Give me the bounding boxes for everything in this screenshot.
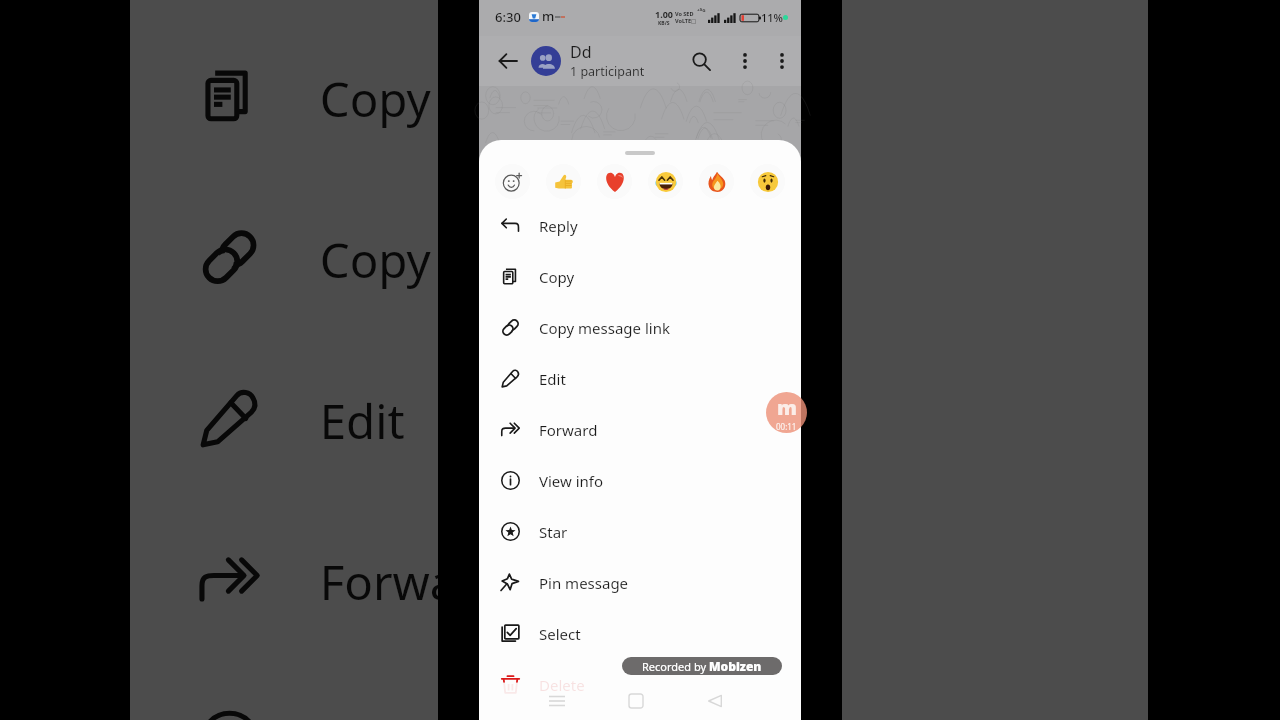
staticText: Delete — [539, 675, 585, 695]
button[interactable]: React — [742, 161, 793, 201]
button[interactable]: React — [538, 161, 589, 201]
staticText: Copy message link — [320, 227, 734, 290]
button[interactable]: Group avatar — [531, 46, 561, 76]
button[interactable]: Edit — [130, 338, 1148, 499]
button[interactable]: Back — [493, 46, 523, 76]
button[interactable]: Copy message link — [130, 177, 1148, 338]
button[interactable]: React — [487, 161, 538, 201]
button[interactable]: Search — [685, 45, 717, 77]
staticText: Mobizen — [709, 658, 762, 674]
staticText: Vo SED — [675, 10, 694, 17]
staticText: Forward — [320, 550, 506, 613]
button[interactable]: React — [640, 161, 691, 201]
staticText: m — [542, 7, 555, 25]
button[interactable]: More options — [729, 45, 761, 77]
staticText: Edit — [539, 369, 566, 389]
button[interactable]: Reply — [130, 0, 1148, 15]
button[interactable]: View info — [479, 455, 801, 506]
staticText: ⁺⁵ᴳ — [697, 7, 706, 17]
staticText: VoLTE□ — [675, 17, 697, 24]
button[interactable]: Overflow menu — [766, 45, 798, 77]
button[interactable]: Home — [621, 686, 651, 716]
button[interactable]: Edit — [479, 353, 801, 404]
staticText: Copy — [539, 267, 575, 287]
button[interactable]: Pin message — [479, 557, 801, 608]
staticText: Select — [539, 624, 581, 644]
staticText: Reply — [539, 216, 578, 236]
button[interactable]: Copy message link — [479, 302, 801, 353]
button[interactable]: Reply — [479, 200, 801, 251]
staticText: Copy — [320, 66, 433, 129]
button[interactable]: View info — [130, 660, 1148, 720]
button[interactable]: Copy — [479, 251, 801, 302]
staticText: 1 participant — [570, 63, 645, 80]
staticText: 6:30 — [495, 8, 521, 26]
button[interactable]: Forward — [479, 404, 801, 455]
staticText: Recorded by — [642, 659, 709, 674]
staticText: Star — [539, 522, 568, 542]
staticText: View info — [539, 471, 604, 491]
staticText: 00:11 — [776, 421, 797, 432]
staticText: View info — [320, 711, 525, 720]
button[interactable]: Star — [479, 506, 801, 557]
staticText: 11% — [761, 10, 783, 25]
button[interactable]: React — [589, 161, 640, 201]
staticText: Edit — [320, 388, 405, 452]
button[interactable]: React — [691, 161, 742, 201]
staticText: m — [777, 394, 797, 421]
button[interactable]: Select — [479, 608, 801, 659]
button[interactable]: Copy — [130, 15, 1148, 176]
staticText: Forward — [539, 420, 598, 440]
staticText: KB/S — [658, 20, 670, 27]
staticText: Dd — [570, 41, 592, 63]
button[interactable]: Delete — [479, 659, 801, 710]
button[interactable]: Recents — [542, 686, 572, 716]
staticText: 1.00 — [655, 8, 673, 20]
staticText: Pin message — [539, 573, 629, 593]
button[interactable]: Forward — [130, 499, 1148, 660]
staticText: Copy message link — [539, 318, 670, 338]
button[interactable]: Back — [700, 686, 730, 716]
